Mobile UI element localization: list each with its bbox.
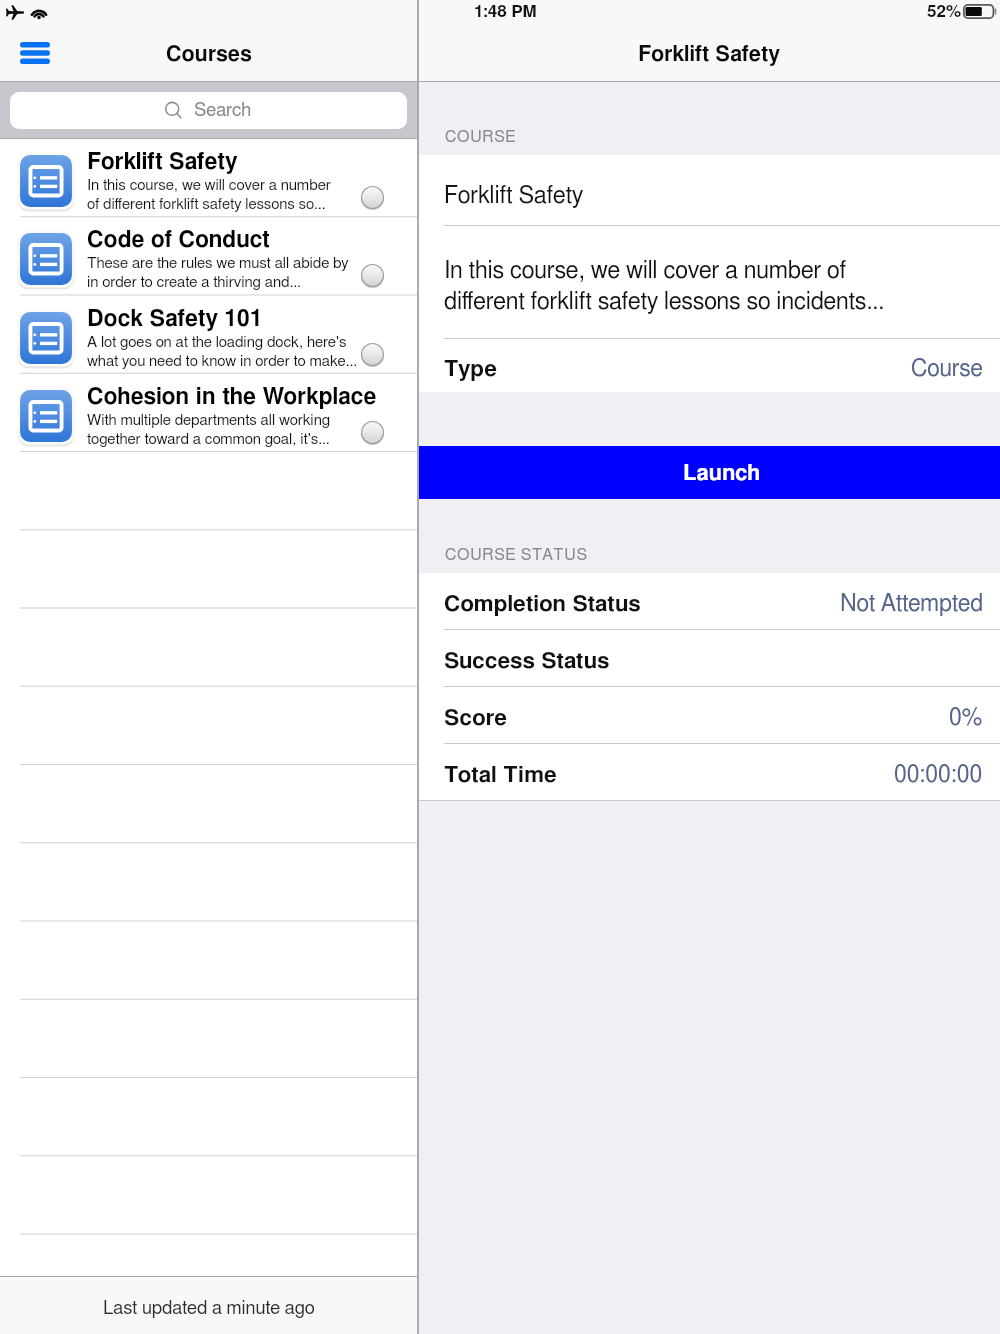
staticText: Completion Status	[444, 593, 641, 616]
button[interactable]: Launch	[419, 446, 1000, 499]
staticText: Last updated a minute ago	[103, 1299, 315, 1318]
staticText: Courses	[166, 44, 252, 66]
staticText: Course	[911, 358, 983, 381]
staticText: 52%	[927, 3, 962, 20]
button[interactable]: Search	[10, 92, 407, 129]
button[interactable]: Menu	[8, 31, 62, 75]
staticText: COURSE STATUS	[445, 547, 588, 563]
staticText: In this course, we will cover a number o…	[87, 178, 331, 212]
staticText: Search	[194, 101, 252, 120]
button[interactable]: Code of Conduct	[0, 217, 417, 295]
staticText: Not Attempted	[840, 593, 983, 616]
staticText: A lot goes on at the loading dock, here'…	[87, 335, 358, 369]
staticText: Forklift Safety	[444, 184, 584, 208]
staticText: COURSE	[445, 129, 517, 145]
staticText: Code of Conduct	[87, 229, 270, 252]
button[interactable]: Score	[419, 687, 1000, 744]
button[interactable]: Cohesion in the Workplace	[0, 374, 417, 452]
staticText: Forklift Safety	[638, 44, 781, 66]
staticText: 0%	[949, 707, 983, 730]
staticText: Score	[444, 707, 508, 730]
staticText: 1:48 PM	[474, 3, 537, 20]
button[interactable]: Success Status	[419, 630, 1000, 687]
button[interactable]: Forklift Safety	[0, 139, 417, 217]
button[interactable]: Completion Status	[419, 573, 1000, 630]
staticText: These are the rules we must all abide by…	[87, 256, 349, 290]
staticText: Forklift Safety	[87, 151, 238, 174]
staticText: Cohesion in the Workplace	[87, 386, 377, 409]
staticText: Total Time	[444, 764, 557, 787]
button[interactable]: Dock Safety 101	[0, 296, 417, 374]
staticText: Success Status	[444, 650, 610, 673]
staticText: Launch	[683, 462, 761, 484]
staticText: In this course, we will cover a number o…	[444, 259, 885, 314]
button[interactable]: Total Time	[419, 744, 1000, 801]
staticText: With multiple departments all working to…	[87, 413, 331, 447]
staticText: Type	[444, 358, 498, 381]
staticText: 00:00:00	[894, 764, 983, 787]
staticText: Dock Safety 101	[87, 308, 263, 331]
